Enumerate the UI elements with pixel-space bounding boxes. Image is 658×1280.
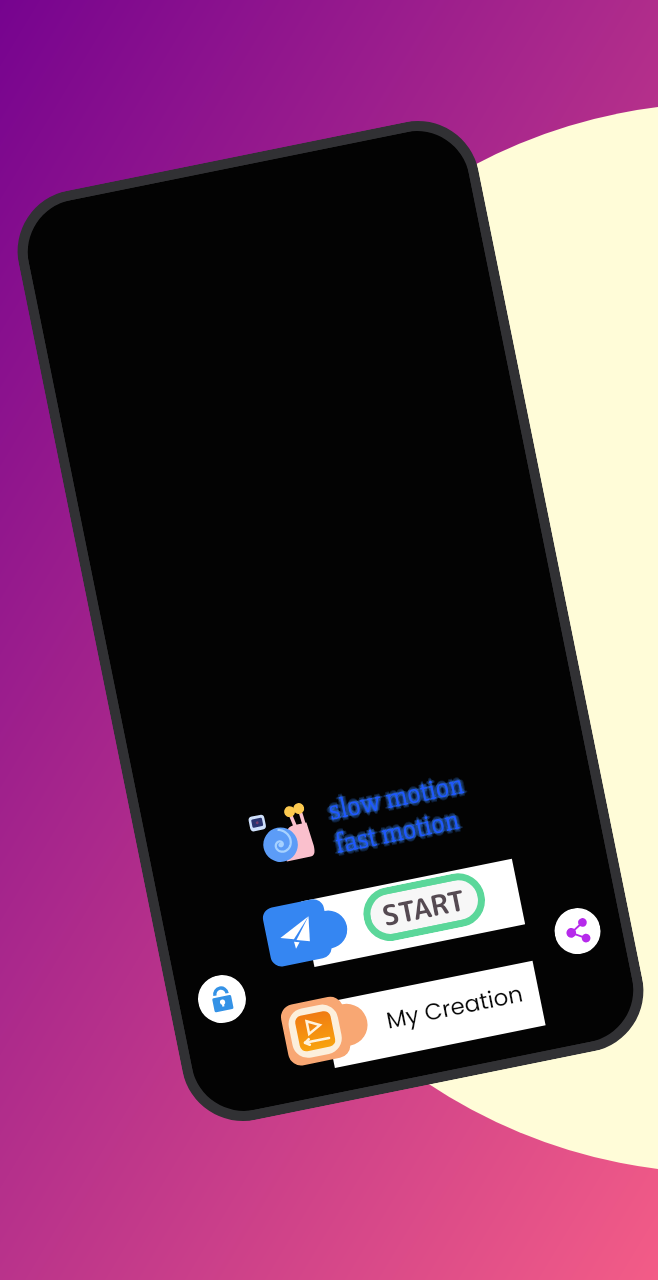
- staticText: fast motion: [329, 803, 459, 862]
- staticText: fast motion: [333, 806, 463, 864]
- staticText: fast motion: [332, 803, 462, 861]
- button[interactable]: START: [250, 849, 536, 982]
- staticText: fast motion: [331, 802, 461, 860]
- staticText: fast motion: [332, 805, 463, 863]
- button[interactable]: Lock: [194, 971, 250, 1027]
- staticText: fast motion: [330, 803, 460, 862]
- staticText: fast motion: [335, 802, 465, 861]
- staticText: slow motion: [325, 768, 466, 829]
- staticText: slow motion: [325, 767, 466, 828]
- staticText: slow motion: [328, 767, 469, 827]
- staticText: slow motion: [326, 768, 467, 828]
- button[interactable]: My Creation: [271, 952, 557, 1085]
- staticText: slow motion: [325, 765, 466, 826]
- staticText: fast motion: [334, 802, 464, 861]
- staticText: fast motion: [333, 802, 463, 860]
- staticText: fast motion: [331, 804, 461, 862]
- staticText: slow motion: [327, 767, 468, 827]
- staticText: slow motion: [322, 768, 463, 828]
- staticText: START: [379, 880, 470, 935]
- staticText: slow motion: [324, 766, 465, 827]
- button[interactable]: Share: [550, 904, 605, 958]
- staticText: slow motion: [326, 766, 467, 827]
- staticText: My Creation: [383, 977, 526, 1036]
- staticText: slow motion: [323, 768, 464, 828]
- staticText: slow motion: [326, 770, 467, 831]
- staticText: fast motion: [333, 803, 463, 862]
- staticText: slow motion: [326, 769, 467, 830]
- staticText: fast motion: [332, 801, 462, 859]
- staticText: fast motion: [331, 800, 462, 858]
- staticText: slow motion: [325, 764, 466, 825]
